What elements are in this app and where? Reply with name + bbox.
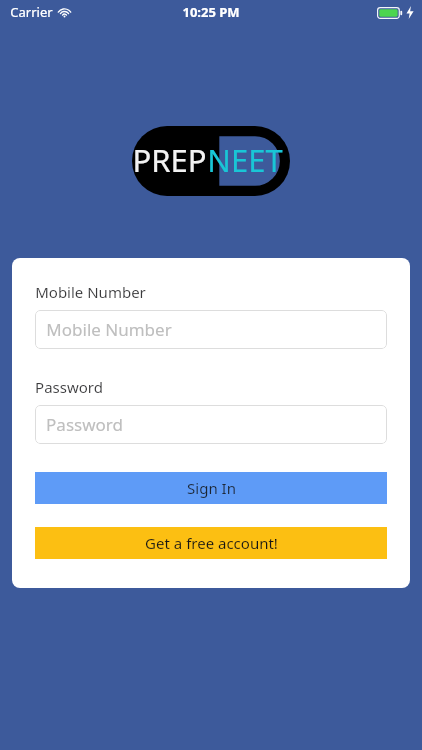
button[interactable]: Mobile Number — [35, 310, 387, 349]
staticText: Password — [35, 377, 103, 397]
staticText: PREP — [132, 139, 207, 181]
staticText: Mobile Number — [35, 282, 146, 302]
staticText: NEET — [207, 139, 283, 181]
staticText: Get a free account! — [145, 533, 278, 553]
button[interactable]: Sign In — [35, 472, 387, 504]
button[interactable]: Password — [35, 405, 387, 444]
button[interactable]: Get a free account! — [35, 527, 387, 559]
staticText: Password — [46, 413, 123, 436]
staticText: 10:25 PM — [182, 3, 240, 21]
staticText: Sign In — [187, 478, 236, 498]
staticText: Carrier — [10, 3, 53, 21]
staticText: Mobile Number — [46, 318, 172, 341]
